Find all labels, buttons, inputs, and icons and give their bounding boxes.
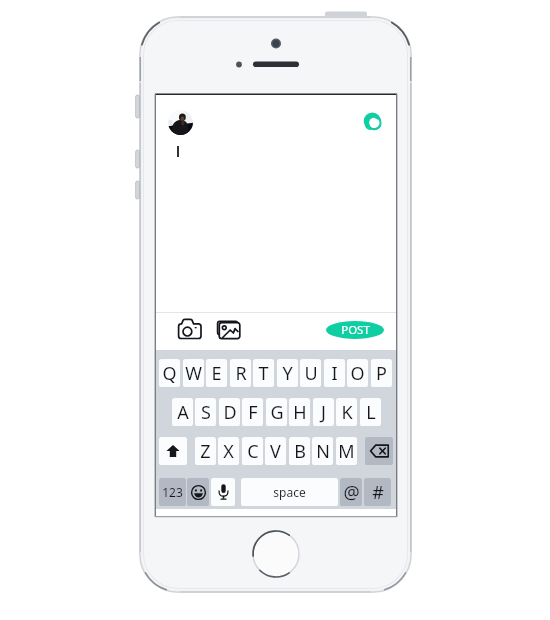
- button[interactable]: Emoji: [187, 478, 209, 506]
- staticText: @: [343, 480, 360, 505]
- button[interactable]: S: [195, 398, 216, 426]
- staticText: O: [350, 361, 365, 386]
- staticText: Z: [200, 439, 211, 464]
- button[interactable]: E: [206, 359, 227, 387]
- button[interactable]: Shift: [159, 437, 187, 465]
- staticText: M: [338, 439, 355, 464]
- staticText: H: [293, 400, 307, 425]
- staticText: B: [294, 439, 306, 464]
- staticText: J: [321, 400, 326, 425]
- button[interactable]: M: [336, 437, 357, 465]
- button[interactable]: T: [253, 359, 274, 387]
- button[interactable]: F: [242, 398, 263, 426]
- staticText: N: [316, 439, 330, 464]
- button[interactable]: H: [289, 398, 310, 426]
- button[interactable]: Y: [277, 359, 298, 387]
- staticText: Q: [162, 361, 177, 386]
- staticText: S: [201, 400, 211, 425]
- button[interactable]: B: [289, 437, 310, 465]
- staticText: #: [372, 480, 384, 505]
- staticText: E: [211, 361, 222, 386]
- button[interactable]: App logo: [363, 110, 383, 132]
- button[interactable]: J: [313, 398, 334, 426]
- staticText: G: [270, 400, 284, 425]
- button[interactable]: space: [241, 478, 338, 506]
- button[interactable]: Voice input: [211, 478, 235, 506]
- button[interactable]: P: [371, 359, 392, 387]
- button[interactable]: Q: [159, 359, 180, 387]
- button[interactable]: O: [347, 359, 368, 387]
- button[interactable]: X: [218, 437, 239, 465]
- button[interactable]: V: [265, 437, 286, 465]
- button[interactable]: @: [340, 478, 362, 506]
- button[interactable]: G: [266, 398, 287, 426]
- staticText: POST: [341, 322, 370, 338]
- button[interactable]: N: [312, 437, 333, 465]
- button[interactable]: #: [364, 478, 391, 506]
- button[interactable]: W: [183, 359, 204, 387]
- button[interactable]: Photo gallery: [216, 318, 242, 339]
- staticText: W: [185, 361, 202, 386]
- staticText: A: [177, 400, 189, 425]
- staticText: P: [376, 361, 387, 386]
- staticText: K: [341, 400, 353, 425]
- button[interactable]: U: [300, 359, 321, 387]
- button[interactable]: 123: [159, 478, 186, 506]
- button[interactable]: K: [336, 398, 357, 426]
- button[interactable]: A: [172, 398, 193, 426]
- staticText: T: [258, 361, 269, 386]
- button[interactable]: Camera: [176, 318, 204, 339]
- staticText: L: [366, 400, 376, 425]
- staticText: U: [304, 361, 318, 386]
- staticText: C: [247, 439, 259, 464]
- button[interactable]: L: [360, 398, 381, 426]
- staticText: X: [223, 439, 234, 464]
- staticText: V: [270, 439, 281, 464]
- button[interactable]: Profile photo: [168, 110, 193, 135]
- staticText: D: [223, 400, 237, 425]
- button[interactable]: Backspace: [365, 437, 393, 465]
- button[interactable]: C: [242, 437, 263, 465]
- staticText: I: [331, 361, 338, 386]
- button[interactable]: I: [324, 359, 345, 387]
- button[interactable]: R: [230, 359, 251, 387]
- button[interactable]: D: [219, 398, 240, 426]
- button[interactable]: Z: [195, 437, 216, 465]
- button[interactable]: POST: [326, 321, 384, 339]
- staticText: R: [235, 361, 247, 386]
- staticText: F: [248, 400, 258, 425]
- staticText: Y: [282, 361, 293, 386]
- staticText: 123: [162, 484, 183, 500]
- staticText: space: [273, 484, 306, 500]
